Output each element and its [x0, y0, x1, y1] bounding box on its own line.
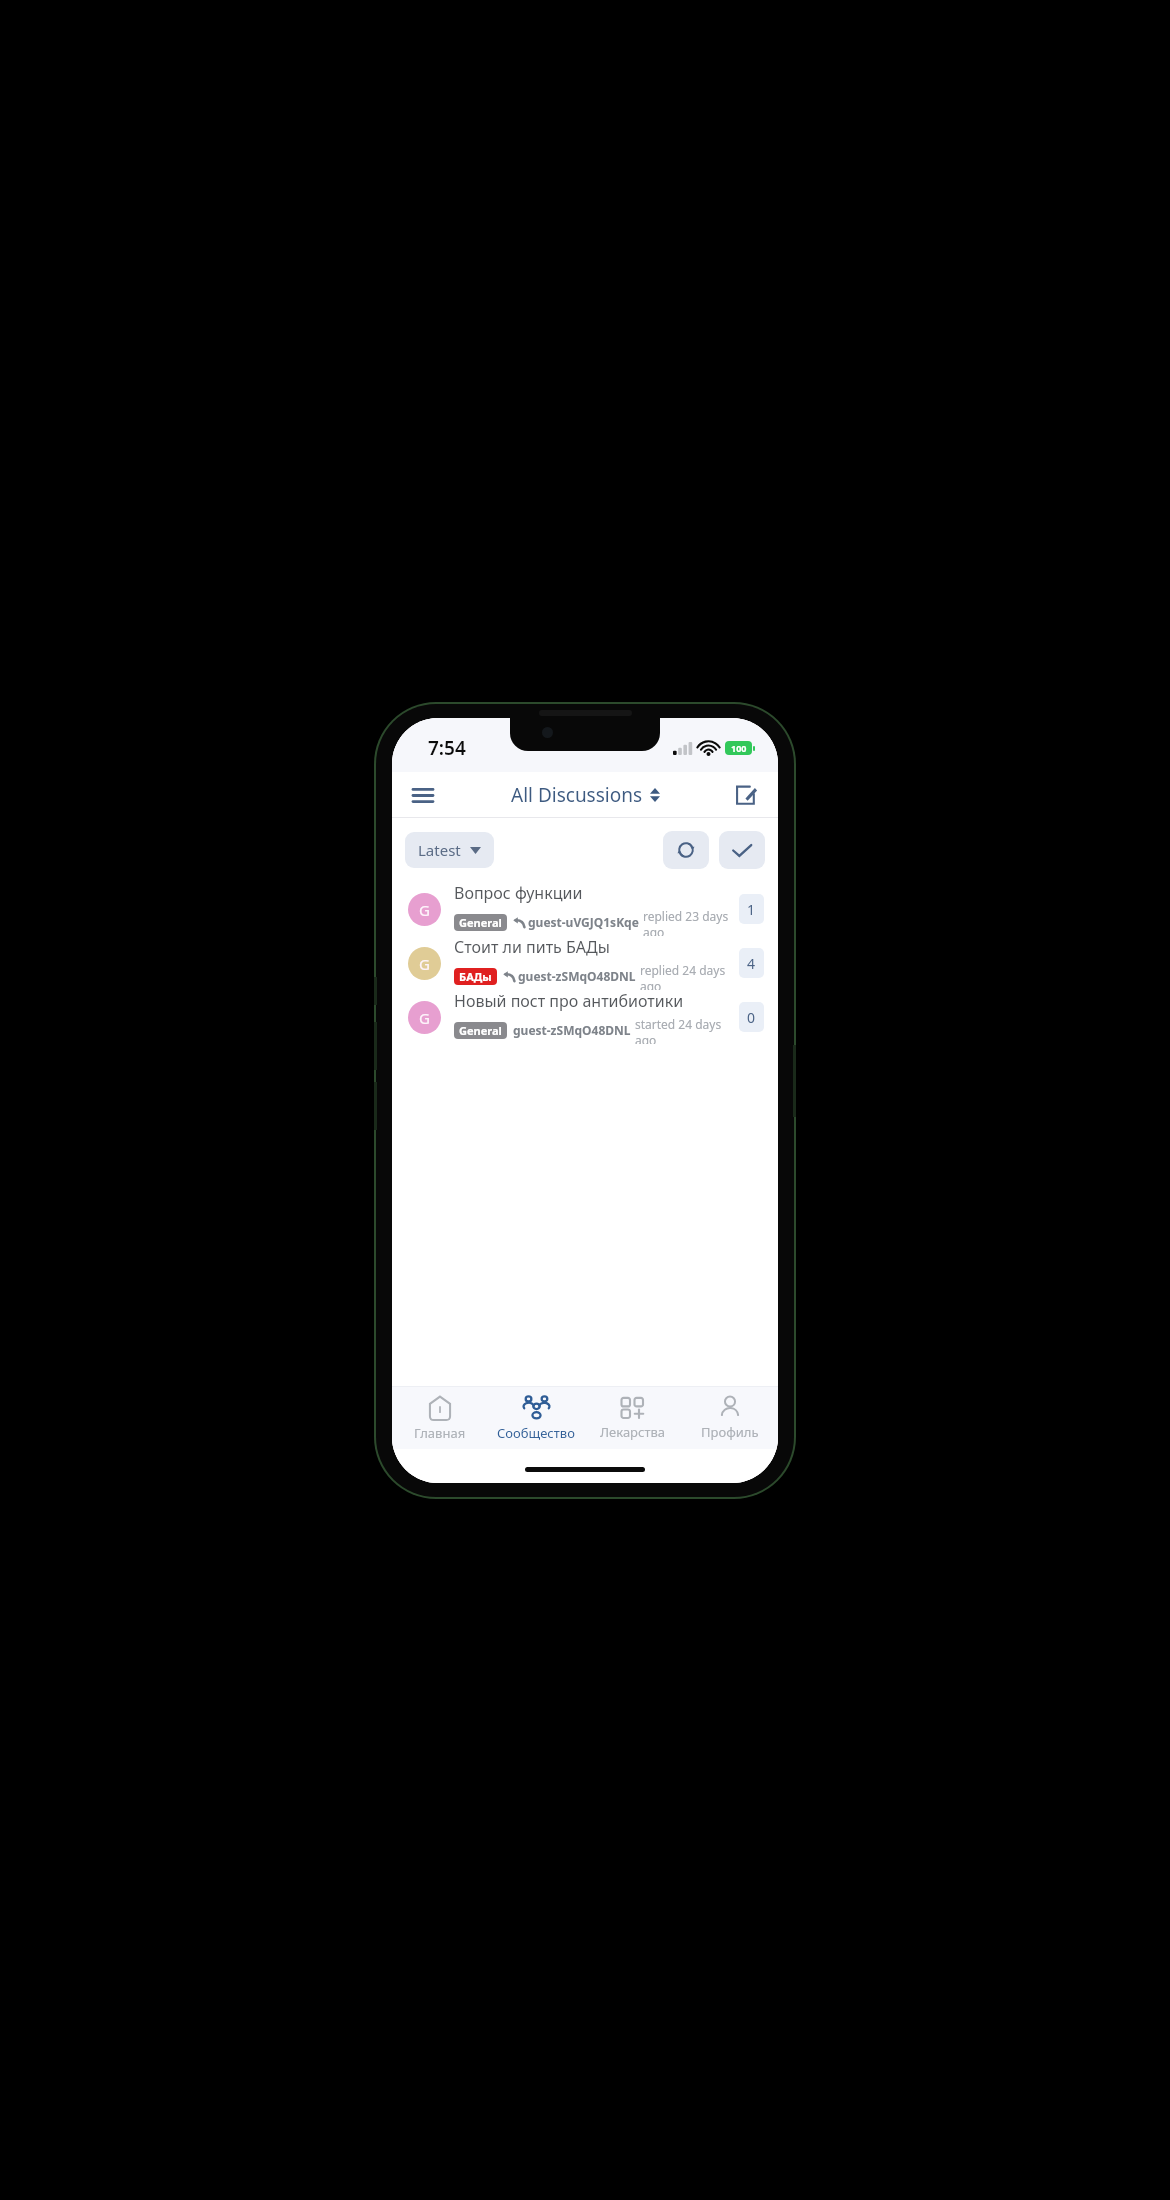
staticText: G	[419, 1008, 430, 1028]
button[interactable]: All Discussions	[503, 778, 668, 812]
staticText: Главная	[414, 1424, 466, 1442]
staticText: replied 24 days ago	[640, 962, 731, 990]
staticText: All Discussions	[511, 782, 643, 808]
staticText: Профиль	[701, 1423, 759, 1441]
staticText: 4	[747, 954, 756, 973]
button[interactable]: Лекарства	[584, 1387, 681, 1449]
staticText: 0	[747, 1008, 756, 1027]
staticText: guest-uVGJQ1sKqe	[528, 914, 639, 930]
button[interactable]: New discussion	[724, 774, 766, 816]
staticText: 100	[731, 742, 747, 754]
button[interactable]: Профиль	[681, 1387, 778, 1449]
staticText: 1	[747, 900, 756, 919]
staticText: Новый пост про антибиотики	[454, 990, 684, 1012]
staticText: Latest	[418, 840, 461, 860]
button[interactable]: Главная	[392, 1387, 488, 1449]
staticText: started 24 days ago	[635, 1016, 731, 1044]
staticText: General	[459, 1023, 502, 1038]
button[interactable]: Сообщество	[488, 1387, 584, 1449]
button[interactable]: G	[392, 936, 778, 990]
button[interactable]: Mark all as read	[719, 831, 765, 869]
staticText: replied 23 days ago	[643, 908, 731, 936]
button[interactable]: Menu	[402, 774, 444, 816]
staticText: Лекарства	[600, 1423, 666, 1441]
staticText: 7:54	[428, 735, 466, 761]
staticText: БАДы	[459, 969, 492, 984]
staticText: guest-zSMqO48DNL	[518, 968, 636, 984]
button[interactable]: G	[392, 990, 778, 1044]
button[interactable]: G	[392, 882, 778, 936]
staticText: G	[419, 954, 430, 974]
button[interactable]: Latest	[405, 832, 494, 868]
staticText: General	[459, 915, 502, 930]
staticText: Стоит ли пить БАДы	[454, 936, 610, 958]
staticText: guest-zSMqO48DNL	[513, 1022, 631, 1038]
staticText: Сообщество	[497, 1424, 575, 1442]
staticText: Вопрос функции	[454, 882, 583, 904]
staticText: G	[419, 900, 430, 920]
button[interactable]: Refresh	[663, 831, 709, 869]
